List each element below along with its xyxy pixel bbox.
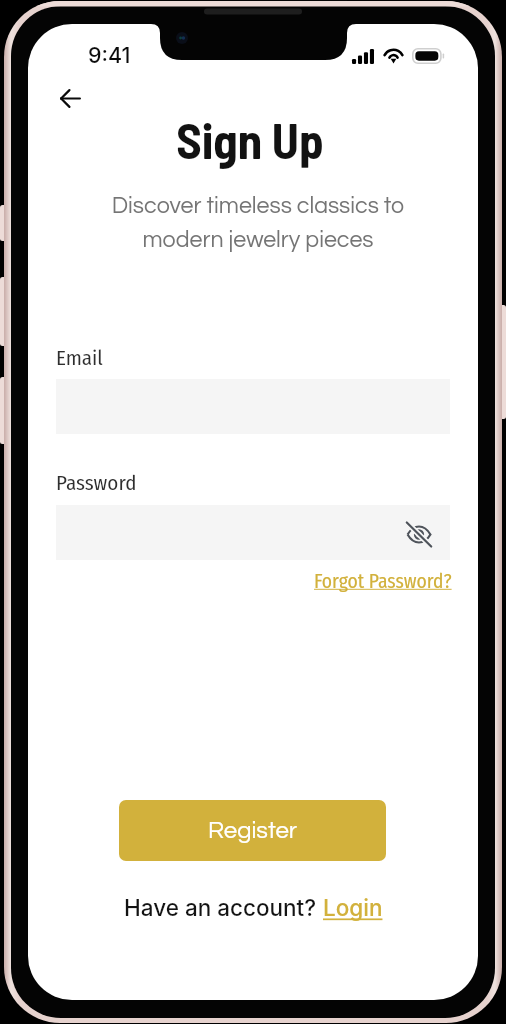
- staticText: 9:41: [88, 42, 131, 68]
- button[interactable]: Forgot Password?: [250, 570, 452, 593]
- button[interactable]: Show password: [402, 517, 436, 551]
- button[interactable]: Register: [119, 800, 386, 861]
- staticText: Forgot Password?: [314, 570, 452, 593]
- button[interactable]: Show password: [56, 505, 450, 560]
- button[interactable]: Back: [48, 76, 92, 120]
- staticText: Password: [56, 470, 137, 495]
- staticText: Discover timeless classics to modern jew…: [33, 194, 478, 252]
- staticText: Register: [208, 818, 298, 843]
- staticText: Sign Up: [28, 110, 475, 169]
- staticText: Email: [56, 345, 103, 370]
- button[interactable]: Login: [323, 894, 383, 921]
- staticText: Have an account?: [124, 894, 323, 921]
